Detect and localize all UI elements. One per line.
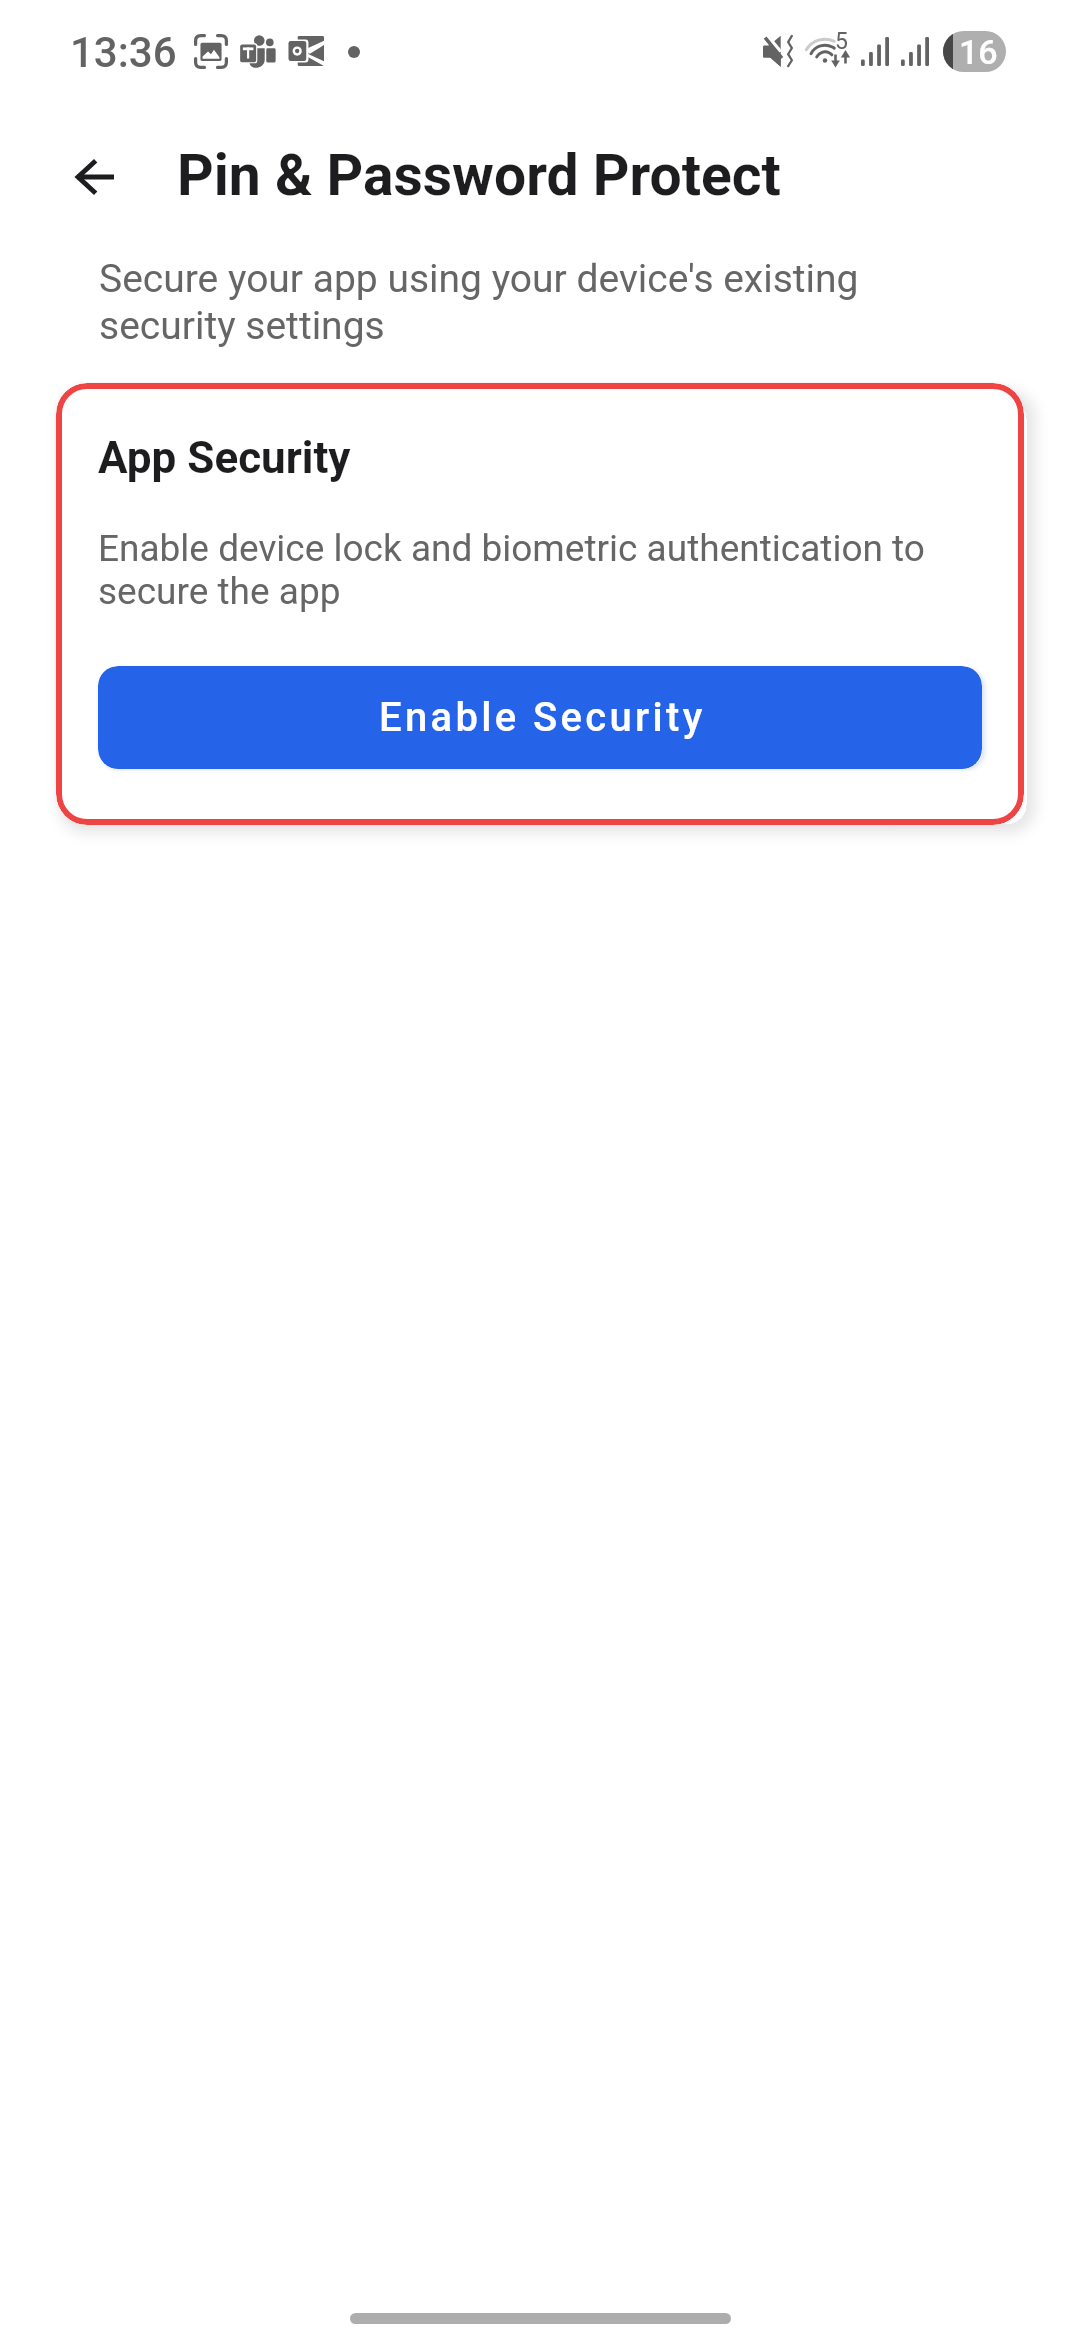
button[interactable]: Enable Security: [98, 666, 982, 769]
button[interactable]: Back: [54, 137, 134, 217]
staticText: 16: [959, 32, 998, 72]
staticText: Secure your app using your device's exis…: [99, 256, 859, 349]
staticText: App Security: [98, 432, 351, 484]
staticText: 13:36: [70, 28, 177, 77]
staticText: Pin & Password Protect: [177, 142, 781, 209]
staticText: Enable device lock and biometric authent…: [98, 527, 925, 613]
staticText: 5: [835, 28, 848, 55]
staticText: Enable Security: [379, 694, 706, 741]
